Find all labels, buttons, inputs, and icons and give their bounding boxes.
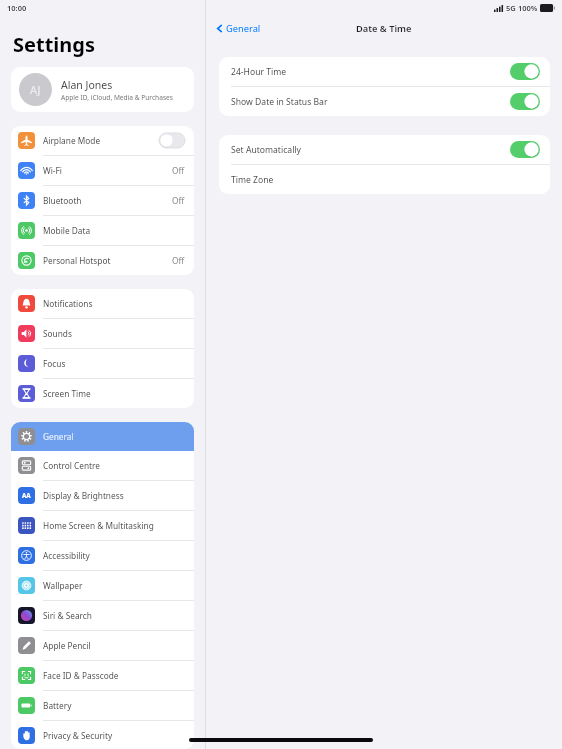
staticText: Bluetooth [43, 195, 172, 206]
staticText: Screen Time [43, 388, 185, 399]
other: Toggle [510, 141, 540, 158]
button[interactable]: Apple Pencil [11, 631, 194, 660]
button[interactable]: Sounds [11, 319, 194, 348]
button[interactable]: Personal Hotspot [11, 246, 194, 275]
button[interactable]: Airplane Mode [11, 126, 194, 155]
staticText: Date & Time [356, 22, 412, 35]
staticText: Off [172, 195, 185, 206]
staticText: Airplane Mode [43, 135, 159, 146]
staticText: Time Zone [231, 174, 540, 186]
staticText: Set Automatically [231, 144, 510, 156]
staticText: Apple ID, iCloud, Media & Purchases [61, 93, 173, 102]
staticText: 5G [506, 3, 516, 13]
staticText: Battery [43, 700, 185, 711]
staticText: General [226, 22, 261, 35]
staticText: Display & Brightness [43, 490, 185, 501]
button[interactable]: Battery [11, 691, 194, 720]
staticText: Notifications [43, 298, 185, 309]
button[interactable]: Face ID & Passcode [11, 661, 194, 690]
staticText: 100% [518, 3, 538, 13]
button[interactable]: Show Date in Status Bar [219, 87, 550, 116]
staticText: Mobile Data [43, 225, 185, 236]
button[interactable]: Mobile Data [11, 216, 194, 245]
staticText: Off [172, 255, 185, 266]
button[interactable]: Privacy & Security [11, 721, 194, 749]
staticText: Privacy & Security [43, 730, 185, 741]
button[interactable]: Wi-Fi [11, 156, 194, 185]
button[interactable]: Wallpaper [11, 571, 194, 600]
staticText: Settings [13, 31, 95, 58]
other: Toggle [510, 63, 540, 80]
button[interactable]: 24-Hour Time [219, 57, 550, 86]
button[interactable]: General [213, 20, 263, 37]
button[interactable]: Screen Time [11, 379, 194, 408]
other: Toggle [159, 133, 185, 148]
button[interactable]: Notifications [11, 289, 194, 318]
button[interactable]: Bluetooth [11, 186, 194, 215]
staticText: Accessibility [43, 550, 185, 561]
staticText: Apple Pencil [43, 640, 185, 651]
staticText: Off [172, 165, 185, 176]
staticText: Home Screen & Multitasking [43, 520, 185, 531]
staticText: AJ [30, 82, 41, 97]
button[interactable]: Accessibility [11, 541, 194, 570]
button[interactable]: Control Centre [11, 451, 194, 480]
button[interactable]: AA [11, 481, 194, 510]
button[interactable]: AJ [11, 67, 194, 112]
other: Toggle [510, 93, 540, 110]
staticText: 24-Hour Time [231, 66, 510, 78]
button[interactable]: Time Zone [219, 165, 550, 194]
staticText: Personal Hotspot [43, 255, 172, 266]
button[interactable]: Set Automatically [219, 135, 550, 164]
staticText: AA [22, 491, 31, 500]
staticText: Control Centre [43, 460, 185, 471]
button[interactable]: Siri & Search [11, 601, 194, 630]
staticText: Sounds [43, 328, 185, 339]
staticText: 10:00 [7, 3, 27, 13]
staticText: Focus [43, 358, 185, 369]
staticText: Siri & Search [43, 610, 185, 621]
button[interactable]: General [11, 422, 194, 451]
staticText: Wi-Fi [43, 165, 172, 176]
staticText: Alan Jones [61, 78, 113, 92]
staticText: Face ID & Passcode [43, 670, 185, 681]
staticText: Wallpaper [43, 580, 185, 591]
button[interactable]: Focus [11, 349, 194, 378]
staticText: General [43, 431, 185, 442]
staticText: Show Date in Status Bar [231, 96, 510, 108]
button[interactable]: Home Screen & Multitasking [11, 511, 194, 540]
